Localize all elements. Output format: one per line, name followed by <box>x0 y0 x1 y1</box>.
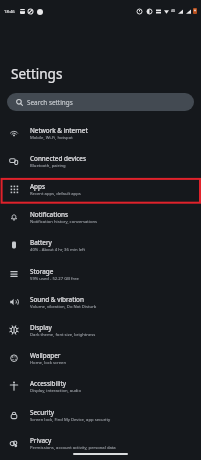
button[interactable]: Sound & vibration <box>0 288 201 316</box>
staticText: Bluetooth, pairing <box>30 163 66 169</box>
button[interactable]: Display <box>0 316 201 344</box>
staticText: 4G <box>171 9 176 13</box>
staticText: Battery <box>30 238 52 247</box>
button[interactable]: Privacy <box>0 429 201 457</box>
button[interactable]: Accessibility <box>0 372 201 400</box>
button[interactable]: Search settings <box>7 93 194 111</box>
staticText: Search settings <box>27 98 73 107</box>
button[interactable]: Connected devices <box>0 147 201 175</box>
staticText: Notifications <box>30 210 69 219</box>
staticText: 18:46 <box>4 9 15 15</box>
button[interactable]: Apps <box>0 175 201 203</box>
staticText: Volume, vibration, Do Not Disturb <box>30 304 97 310</box>
staticText: Dark theme, font size, brightness <box>30 332 96 338</box>
button[interactable]: Notifications <box>0 203 201 231</box>
staticText: Permissions, account activity, personal … <box>30 445 116 451</box>
staticText: Network & internet <box>30 126 88 135</box>
staticText: Wallpaper <box>30 351 61 360</box>
staticText: Security <box>30 408 54 417</box>
staticText: Display, interaction, audio <box>30 388 81 394</box>
staticText: Sound & vibration <box>30 295 84 304</box>
button[interactable]: Wallpaper <box>0 344 201 372</box>
staticText: Privacy <box>30 436 52 445</box>
staticText: Settings <box>11 65 63 83</box>
staticText: Apps <box>30 182 46 191</box>
staticText: Storage <box>30 267 54 276</box>
staticText: Connected devices <box>30 154 87 163</box>
staticText: Display <box>30 323 52 332</box>
button[interactable]: Security <box>0 401 201 429</box>
staticText: Mobile, Wi-Fi, hotspot <box>30 135 73 141</box>
button[interactable]: Battery <box>0 231 201 259</box>
staticText: Accessibility <box>30 379 67 388</box>
staticText: Notification history, conversations <box>30 219 98 225</box>
button[interactable]: Storage <box>0 260 201 288</box>
button[interactable]: Network & internet <box>0 119 201 147</box>
staticText: Recent apps, default apps <box>30 191 81 197</box>
staticText: 59% used - 52.27 GB free <box>30 276 79 282</box>
staticText: 40% - About 4 hr, 36 min left <box>30 247 86 253</box>
staticText: Home, lock screen <box>30 360 67 366</box>
staticText: Screen lock, Find My Device, app securit… <box>30 417 111 423</box>
